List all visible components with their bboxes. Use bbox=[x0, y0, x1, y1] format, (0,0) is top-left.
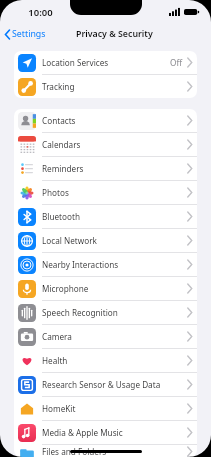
staticText: Photos bbox=[42, 187, 187, 198]
staticText: Settings bbox=[12, 28, 46, 40]
button[interactable]: Microphone bbox=[16, 277, 197, 300]
button[interactable]: Tracking bbox=[16, 75, 197, 98]
staticText: Calendars bbox=[42, 139, 187, 150]
staticText: HomeKit bbox=[42, 403, 187, 414]
staticText: 10:00 bbox=[28, 6, 53, 19]
button[interactable]: Reminders bbox=[16, 157, 197, 180]
button[interactable]: Camera bbox=[16, 325, 197, 348]
button[interactable]: Photos bbox=[16, 181, 197, 204]
staticText: Tracking bbox=[42, 81, 187, 92]
staticText: Privacy & Security bbox=[76, 28, 153, 40]
button[interactable]: Calendars bbox=[16, 133, 197, 156]
staticText: Speech Recognition bbox=[42, 307, 187, 318]
staticText: Nearby Interactions bbox=[42, 259, 187, 270]
button[interactable]: HomeKit bbox=[16, 397, 197, 420]
button[interactable]: Contacts bbox=[16, 109, 197, 132]
staticText: Files and Folders bbox=[42, 446, 187, 457]
staticText: Research Sensor & Usage Data bbox=[42, 379, 187, 390]
staticText: Off bbox=[170, 57, 183, 68]
staticText: Microphone bbox=[42, 283, 187, 294]
staticText: Contacts bbox=[42, 115, 187, 126]
button[interactable]: Settings bbox=[5, 28, 46, 40]
button[interactable]: Location Services bbox=[16, 51, 197, 74]
staticText: Location Services bbox=[42, 57, 170, 68]
button[interactable]: Nearby Interactions bbox=[16, 253, 197, 276]
button[interactable]: Bluetooth bbox=[16, 205, 197, 228]
staticText: Camera bbox=[42, 331, 187, 342]
staticText: Media & Apple Music bbox=[42, 427, 187, 438]
button[interactable]: Files and Folders bbox=[16, 445, 197, 457]
staticText: Bluetooth bbox=[42, 211, 187, 222]
staticText: Health bbox=[42, 355, 187, 366]
staticText: Local Network bbox=[42, 235, 187, 246]
button[interactable]: Health bbox=[16, 349, 197, 372]
button[interactable]: Research Sensor & Usage Data bbox=[16, 373, 197, 396]
button[interactable]: Media & Apple Music bbox=[16, 421, 197, 444]
staticText: Reminders bbox=[42, 163, 187, 174]
button[interactable]: Speech Recognition bbox=[16, 301, 197, 324]
button[interactable]: Local Network bbox=[16, 229, 197, 252]
